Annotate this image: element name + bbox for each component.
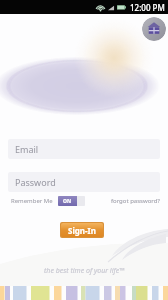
button[interactable]: Email [8, 139, 160, 159]
staticText: ON [63, 198, 72, 205]
button[interactable]: forgot password? [111, 197, 160, 205]
staticText: Sign-In [68, 225, 96, 236]
staticText: Email [15, 143, 39, 155]
button[interactable]: Remember Me [11, 196, 85, 206]
button[interactable]: Profile [142, 17, 166, 41]
button[interactable]: Password [8, 172, 160, 192]
staticText: 12:00 PM [130, 2, 165, 13]
staticText: Password [15, 176, 56, 188]
staticText: the best time of your life™ [44, 266, 125, 276]
staticText: Remember Me [11, 197, 53, 205]
button[interactable]: Sign-In [61, 223, 103, 237]
